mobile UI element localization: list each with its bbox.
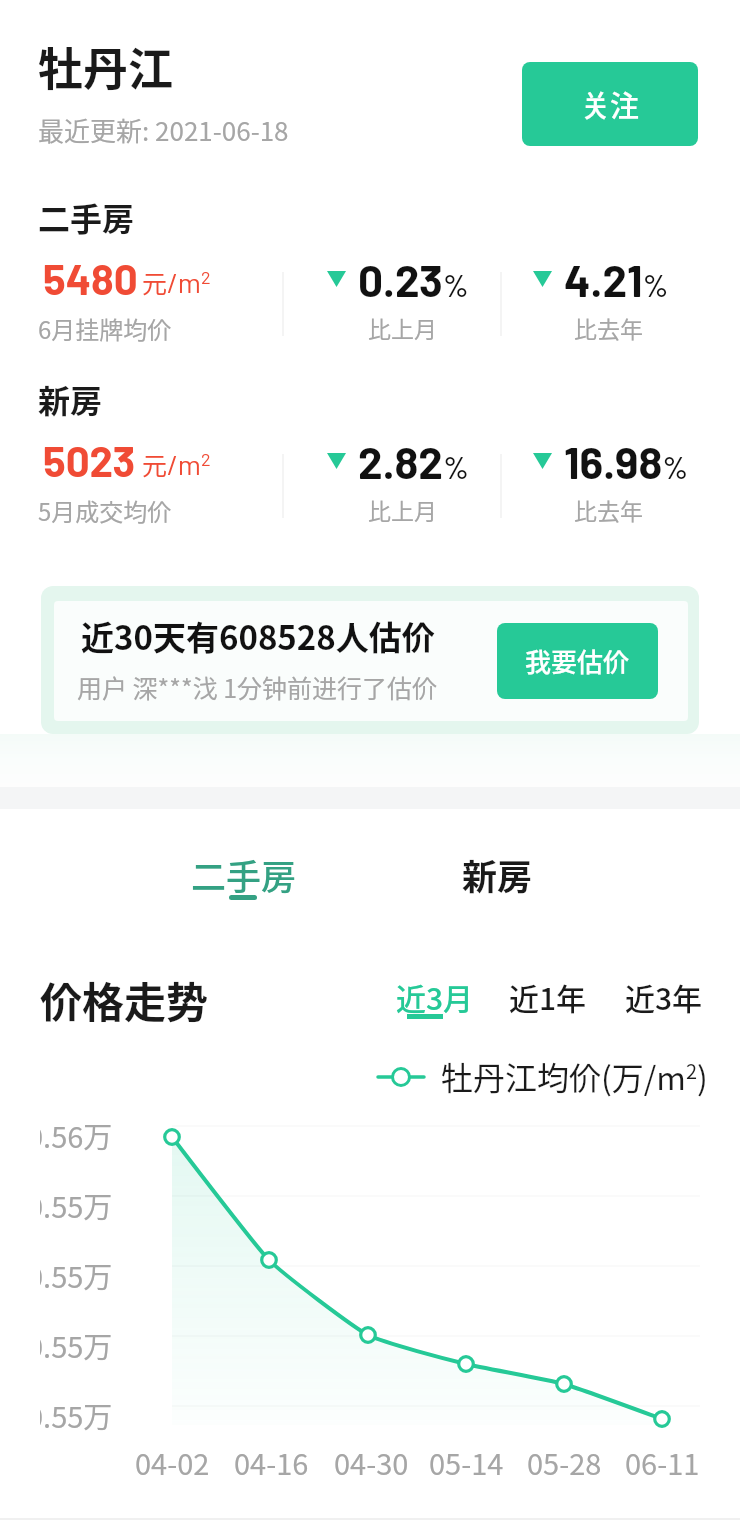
button[interactable]: 二手房 (171, 843, 311, 905)
staticText: 0.55万 (40, 1394, 113, 1436)
staticText: 06-11 (625, 1441, 700, 1483)
staticText: 6月挂牌均价 (38, 311, 172, 346)
staticText: 5023 (43, 435, 136, 485)
staticText: 04-02 (135, 1441, 210, 1483)
button[interactable]: 近3月 (386, 972, 478, 1022)
button[interactable]: 近30天有608528人估价 (41, 586, 699, 734)
button[interactable]: 近3年 (615, 972, 707, 1022)
staticText: 5月成交均价 (38, 493, 172, 528)
staticText: 0.56万 (40, 1114, 113, 1156)
staticText: 0.55万 (40, 1184, 113, 1226)
staticText: 04-30 (334, 1441, 409, 1483)
staticText: 0.23% (358, 253, 469, 306)
staticText: 近3年 (625, 975, 703, 1018)
staticText: 关注 (581, 83, 640, 125)
staticText: 牡丹江均价(万/m2) (441, 1053, 708, 1099)
staticText: 0.55万 (40, 1254, 113, 1296)
button[interactable]: 近1年 (499, 972, 591, 1022)
staticText: 最近更新: 2021-06-18 (38, 111, 289, 149)
button[interactable]: 新房 (444, 843, 552, 905)
staticText: 0.55万 (40, 1324, 113, 1366)
staticText: 近1年 (509, 975, 587, 1018)
staticText: 比上月 (368, 311, 437, 344)
staticText: 5480 (43, 253, 138, 303)
button[interactable]: 关注 (522, 62, 698, 146)
staticText: 2.82% (358, 435, 469, 488)
staticText: 新房 (38, 376, 103, 422)
staticText: 比去年 (574, 493, 643, 526)
staticText: 4.21% (564, 253, 669, 306)
staticText: 我要估价 (525, 642, 630, 680)
staticText: 元/m2 (142, 446, 211, 482)
staticText: 05-14 (429, 1441, 504, 1483)
staticText: 用户 深***㳀 1分钟前进行了估价 (77, 669, 438, 705)
staticText: 比上月 (368, 493, 437, 526)
staticText: 05-28 (527, 1441, 602, 1483)
staticText: 16.98% (564, 435, 689, 488)
staticText: 元/m2 (142, 264, 211, 300)
staticText: 牡丹江 (38, 34, 174, 99)
staticText: 新房 (462, 849, 533, 900)
staticText: 二手房 (38, 194, 135, 240)
staticText: 04-16 (234, 1441, 309, 1483)
button[interactable]: 我要估价 (497, 623, 658, 699)
staticText: 近30天有608528人估价 (81, 612, 435, 660)
staticText: 近3月 (396, 975, 474, 1018)
staticText: 价格走势 (40, 969, 209, 1030)
staticText: 二手房 (191, 849, 297, 900)
staticText: 比去年 (574, 311, 643, 344)
